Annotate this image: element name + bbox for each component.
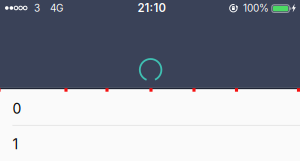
staticText: 100%	[243, 2, 269, 14]
button[interactable]: 0	[0, 91, 300, 125]
staticText: 0	[12, 100, 21, 117]
staticText: 3	[34, 2, 40, 14]
staticText: 4G	[50, 2, 63, 14]
staticText: 21:10	[137, 1, 165, 15]
button[interactable]: 1	[0, 126, 300, 160]
staticText: 1	[12, 136, 18, 152]
